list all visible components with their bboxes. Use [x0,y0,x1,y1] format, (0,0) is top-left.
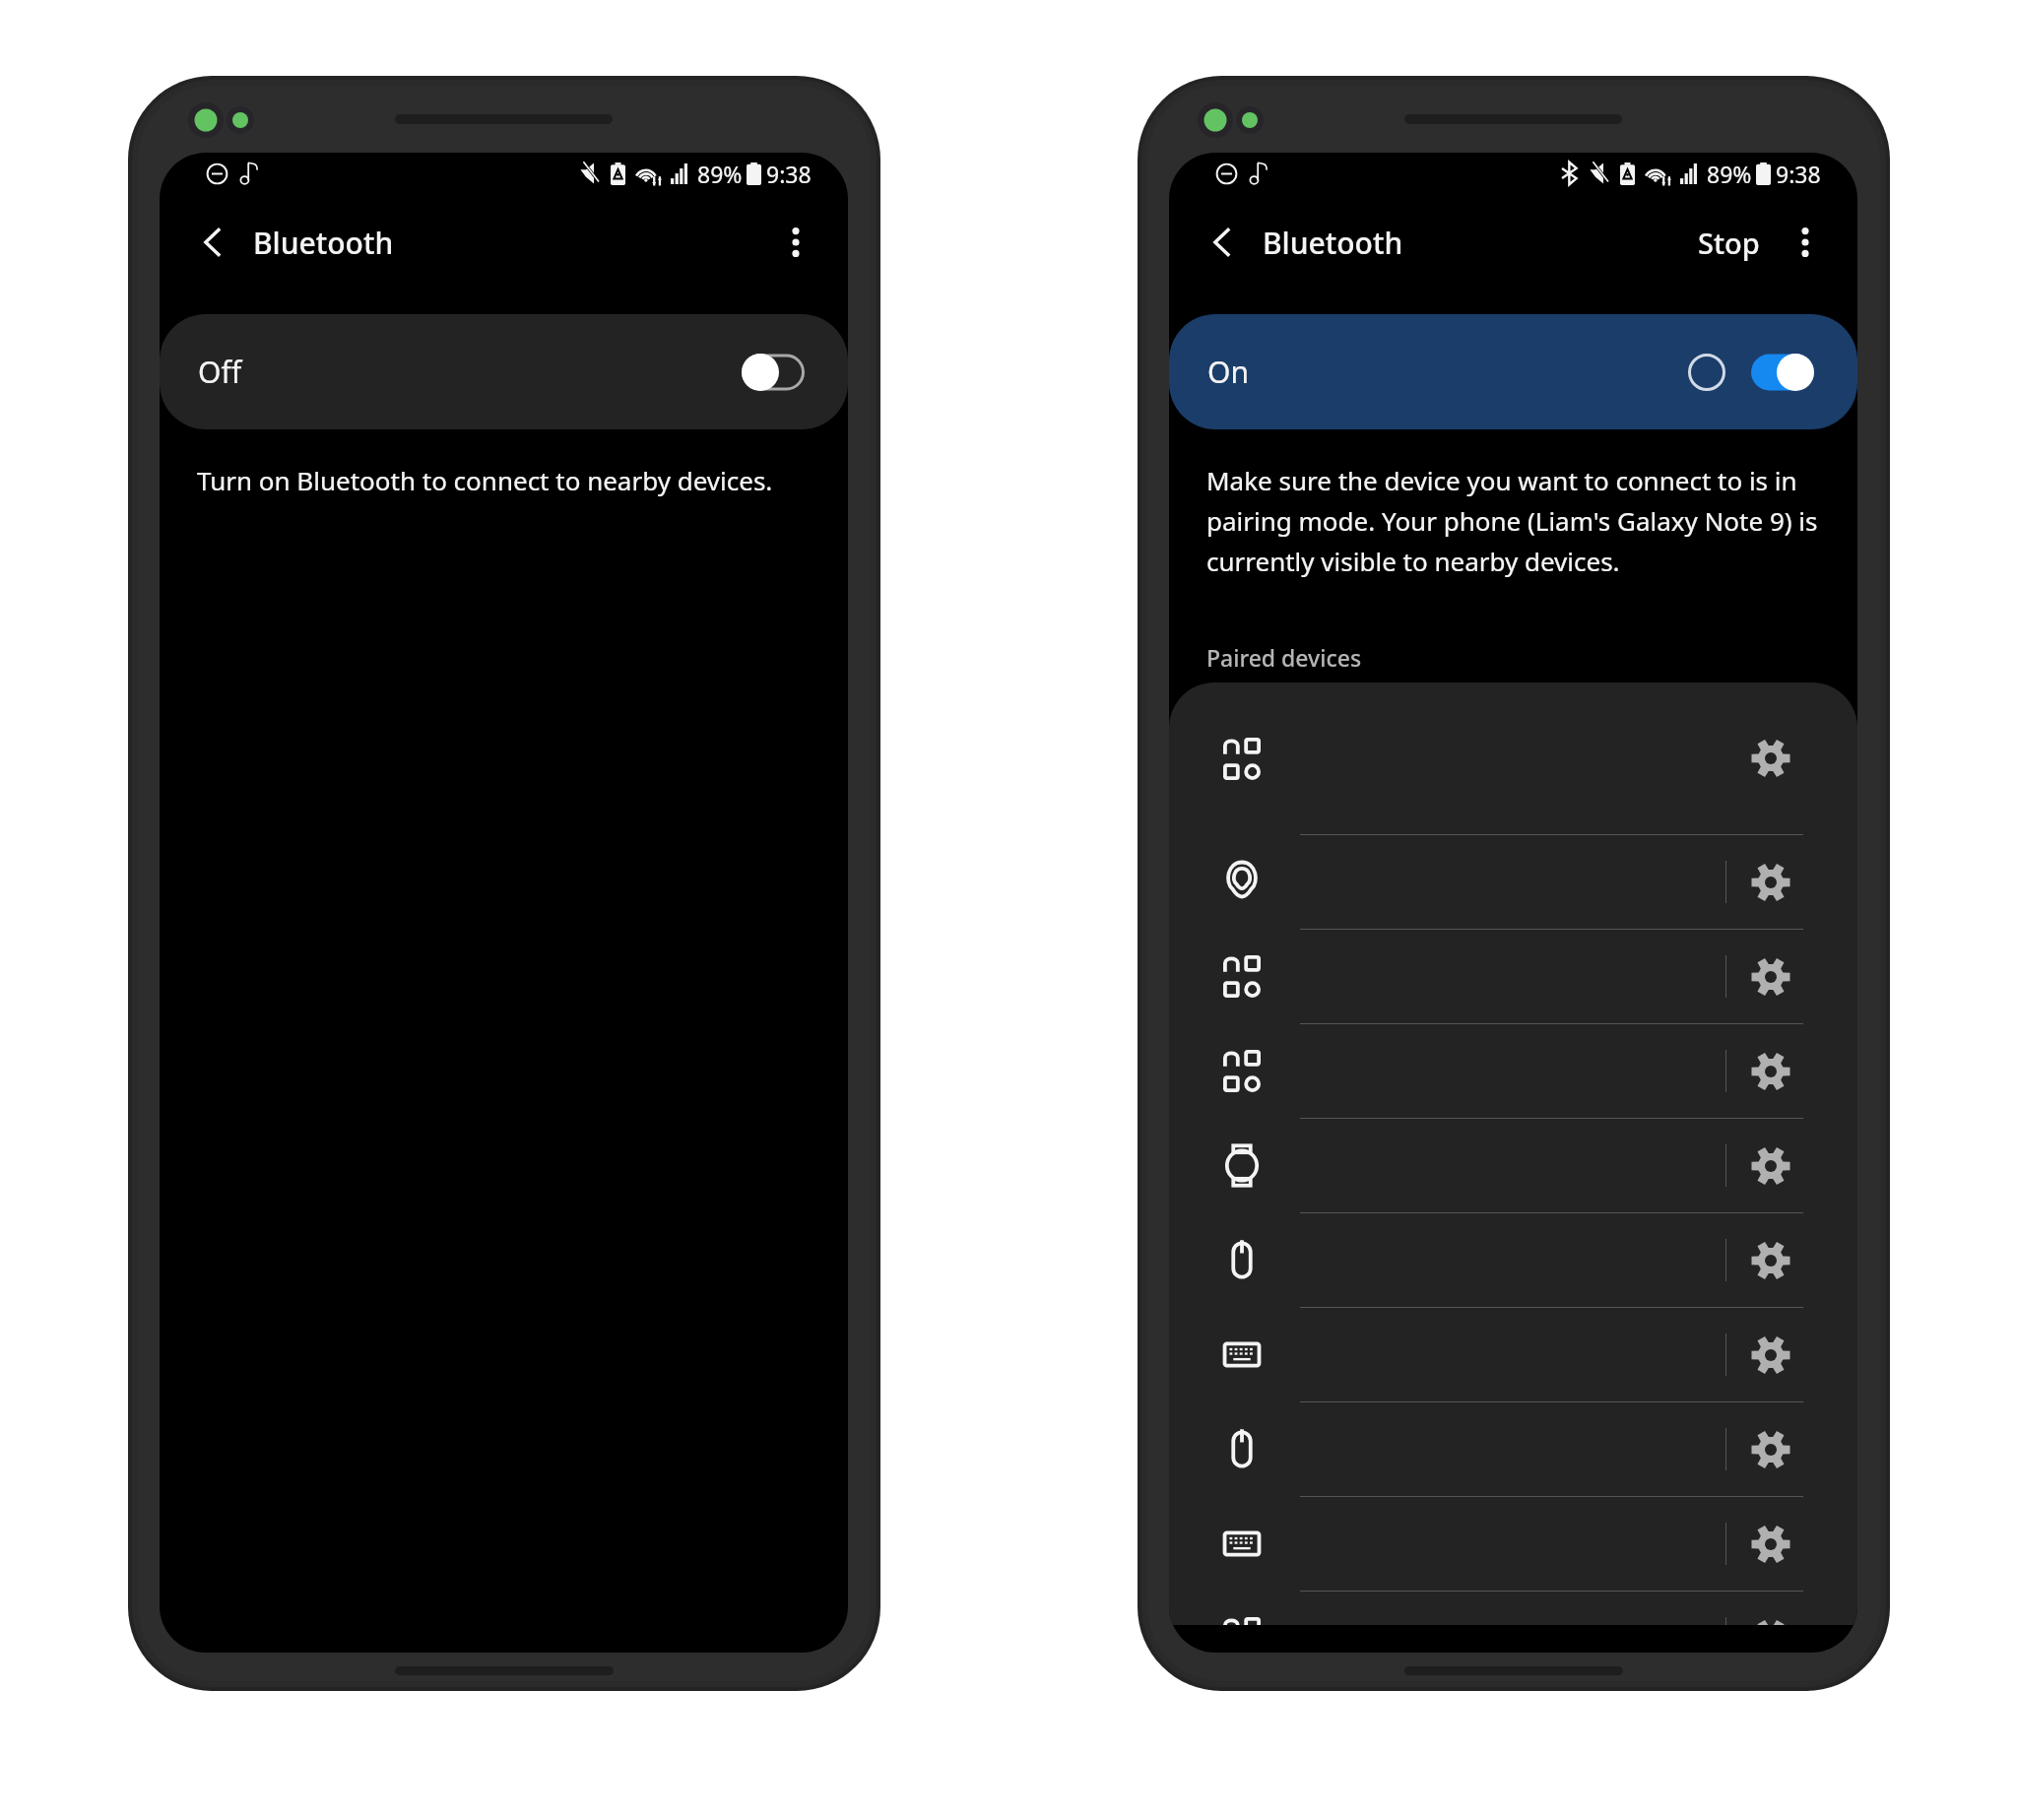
staticText: Make sure the device you want to connect… [1206,463,1848,579]
staticText: Bluetooth [1263,223,1403,263]
staticText: 9:38 [1776,159,1821,189]
button[interactable]: Device settings [1726,1308,1815,1401]
button[interactable]: Device settings [1726,1213,1815,1307]
button[interactable]: Device settings [1169,835,1857,929]
button[interactable]: More options [1784,221,1827,264]
staticText: Paired devices [1206,642,1362,673]
button[interactable]: Device settings [1726,682,1815,834]
staticText: 9:38 [766,159,812,189]
button[interactable]: Navigate up [1197,217,1248,268]
button[interactable]: Device settings [1726,1497,1815,1591]
button[interactable]: Device settings [1726,1119,1815,1212]
staticText: 89% [697,159,743,189]
button[interactable]: Off [160,314,848,429]
button[interactable]: Device settings [1169,930,1857,1023]
button[interactable]: More options [774,221,817,264]
button[interactable]: Device settings [1726,930,1815,1023]
staticText: Bluetooth [253,223,394,263]
button[interactable]: Navigate up [187,217,238,268]
button[interactable]: Stop [1686,214,1772,272]
staticText: 89% [1707,159,1752,189]
staticText: Turn on Bluetooth to connect to nearby d… [197,463,773,497]
button[interactable]: Device settings [1169,682,1857,834]
staticText: Off [198,352,242,392]
button[interactable]: Device settings [1169,1592,1857,1625]
button[interactable]: Device settings [1169,1213,1857,1307]
button[interactable]: Device settings [1169,1024,1857,1118]
button[interactable]: Device settings [1726,1402,1815,1496]
button[interactable]: Device settings [1726,1592,1815,1625]
staticText: On [1207,352,1249,392]
button[interactable]: Device settings [1169,1402,1857,1496]
button[interactable]: Device settings [1169,1497,1857,1591]
button[interactable]: Device settings [1726,1024,1815,1118]
button[interactable]: On [1169,314,1857,429]
button[interactable]: Device settings [1169,1308,1857,1401]
staticText: Stop [1698,224,1760,262]
button[interactable]: Device settings [1726,835,1815,929]
button[interactable]: Device settings [1169,1119,1857,1212]
